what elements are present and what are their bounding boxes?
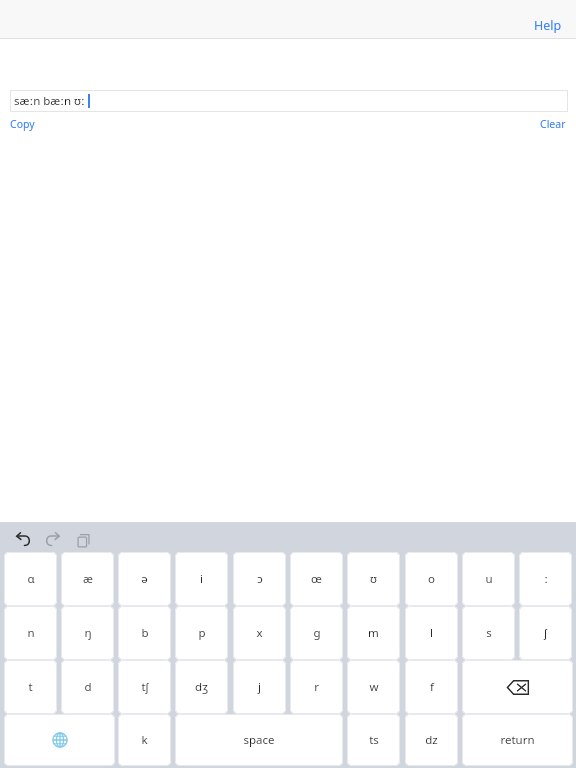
staticText: Clear bbox=[540, 117, 566, 131]
staticText: dʒ bbox=[195, 679, 208, 695]
staticText: x bbox=[256, 625, 263, 641]
staticText: u bbox=[485, 571, 493, 587]
button[interactable]: Copy bbox=[4, 114, 41, 134]
button[interactable]: j bbox=[233, 660, 286, 714]
button[interactable]: ʃ bbox=[519, 606, 572, 660]
button[interactable]: x bbox=[233, 606, 286, 660]
button[interactable]: Copy bbox=[70, 528, 96, 552]
staticText: d bbox=[84, 679, 92, 695]
button[interactable]: Backspace bbox=[462, 660, 573, 714]
button[interactable]: space bbox=[175, 714, 343, 766]
staticText: g bbox=[313, 625, 321, 641]
staticText: ə bbox=[141, 571, 148, 587]
button[interactable]: f bbox=[405, 660, 458, 714]
button[interactable]: ː bbox=[519, 552, 572, 606]
button[interactable]: ts bbox=[347, 714, 400, 766]
staticText: ː bbox=[544, 571, 548, 587]
button[interactable]: œ bbox=[290, 552, 343, 606]
button[interactable]: Undo bbox=[10, 528, 36, 552]
staticText: t bbox=[28, 679, 33, 695]
staticText: i bbox=[200, 571, 203, 587]
staticText: Help bbox=[534, 17, 562, 34]
button[interactable]: u bbox=[462, 552, 515, 606]
button[interactable]: r bbox=[290, 660, 343, 714]
staticText: ŋ bbox=[84, 625, 92, 641]
staticText: o bbox=[428, 571, 435, 587]
staticText: æ bbox=[83, 571, 93, 587]
staticText: l bbox=[430, 625, 433, 641]
button[interactable]: m bbox=[347, 606, 400, 660]
staticText: space bbox=[243, 732, 275, 748]
button[interactable]: o bbox=[405, 552, 458, 606]
button[interactable]: d bbox=[61, 660, 114, 714]
staticText: m bbox=[368, 625, 379, 641]
staticText: dz bbox=[425, 732, 438, 748]
staticText: p bbox=[198, 625, 206, 641]
staticText: s bbox=[486, 625, 492, 641]
button[interactable]: sæːn bæːn ʊː bbox=[10, 90, 568, 112]
button[interactable]: tʃ bbox=[118, 660, 171, 714]
staticText: sæːn bæːn ʊː bbox=[14, 93, 85, 109]
button[interactable]: i bbox=[175, 552, 228, 606]
staticText: œ bbox=[311, 571, 322, 587]
staticText: Copy bbox=[10, 117, 35, 131]
staticText: tʃ bbox=[141, 679, 149, 695]
button[interactable]: ɔ bbox=[233, 552, 286, 606]
staticText: return bbox=[500, 732, 535, 748]
staticText: ʃ bbox=[544, 625, 547, 641]
staticText: ɑ bbox=[27, 571, 35, 587]
button[interactable]: Help bbox=[530, 14, 566, 37]
staticText: n bbox=[27, 625, 35, 641]
button[interactable]: ə bbox=[118, 552, 171, 606]
staticText: ʊ bbox=[370, 571, 377, 587]
button[interactable]: Next keyboard bbox=[4, 714, 115, 766]
staticText: w bbox=[369, 679, 379, 695]
button[interactable]: Clear bbox=[534, 114, 572, 134]
button[interactable]: return bbox=[462, 714, 573, 766]
button[interactable]: Redo bbox=[40, 528, 66, 552]
button[interactable]: æ bbox=[61, 552, 114, 606]
button[interactable]: w bbox=[347, 660, 400, 714]
button[interactable]: ŋ bbox=[61, 606, 114, 660]
staticText: ts bbox=[369, 732, 379, 748]
staticText: ɔ bbox=[257, 571, 263, 587]
button[interactable]: dʒ bbox=[175, 660, 228, 714]
button[interactable]: l bbox=[405, 606, 458, 660]
staticText: j bbox=[258, 679, 261, 695]
button[interactable]: dz bbox=[405, 714, 458, 766]
button[interactable]: ʊ bbox=[347, 552, 400, 606]
button[interactable]: g bbox=[290, 606, 343, 660]
button[interactable]: k bbox=[118, 714, 171, 766]
button[interactable]: t bbox=[4, 660, 57, 714]
button[interactable]: p bbox=[175, 606, 228, 660]
staticText: b bbox=[141, 625, 149, 641]
button[interactable]: s bbox=[462, 606, 515, 660]
staticText: f bbox=[430, 679, 434, 695]
button[interactable]: ɑ bbox=[4, 552, 57, 606]
button[interactable]: n bbox=[4, 606, 57, 660]
staticText: r bbox=[314, 679, 319, 695]
staticText: k bbox=[141, 732, 148, 748]
button[interactable]: b bbox=[118, 606, 171, 660]
